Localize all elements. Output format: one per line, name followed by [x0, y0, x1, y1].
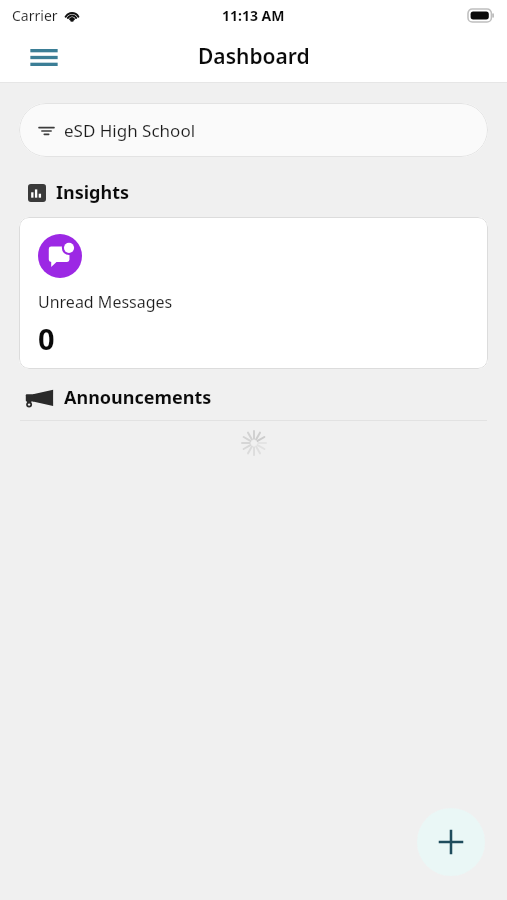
- staticText: Insights: [56, 180, 130, 205]
- staticText: 0: [38, 319, 55, 358]
- button[interactable]: Announcements: [24, 385, 212, 410]
- staticText: Announcements: [64, 385, 212, 410]
- button[interactable]: Unread Messages: [19, 217, 488, 369]
- button[interactable]: Open navigation menu: [27, 40, 61, 74]
- staticText: Unread Messages: [38, 291, 173, 313]
- button[interactable]: eSD High School: [19, 103, 488, 157]
- staticText: Dashboard: [198, 42, 310, 71]
- staticText: eSD High School: [64, 119, 196, 142]
- button[interactable]: Insights: [28, 180, 130, 205]
- staticText: Carrier: [12, 6, 58, 25]
- staticText: 11:13 AM: [222, 6, 285, 25]
- button[interactable]: Add: [417, 808, 485, 876]
